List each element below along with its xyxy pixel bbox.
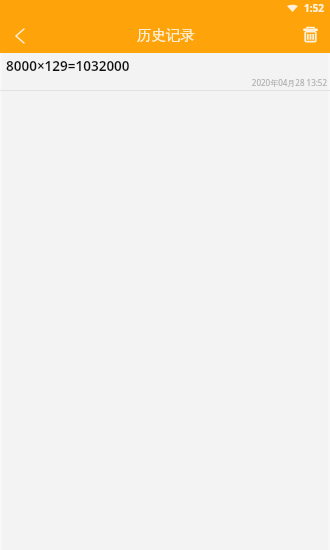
staticText: 1:52: [304, 1, 324, 15]
button[interactable]: Back: [8, 24, 32, 48]
staticText: 2020年04月28 13:52: [0, 77, 327, 88]
staticText: 历史记录: [137, 26, 195, 44]
button[interactable]: Clear history: [299, 23, 321, 45]
button[interactable]: 8000×129=1032000: [0, 53, 330, 91]
staticText: 8000×129=1032000: [6, 57, 130, 75]
